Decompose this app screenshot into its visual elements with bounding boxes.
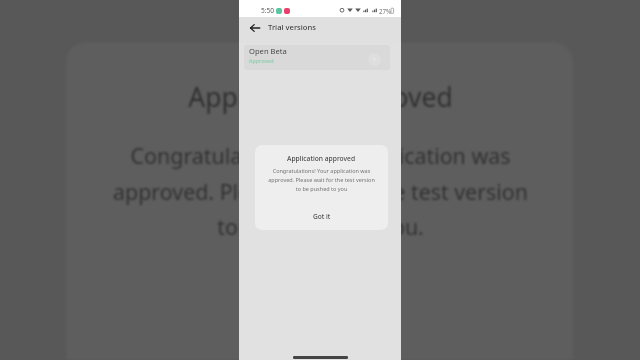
button[interactable]: Back (247, 20, 263, 36)
staticText: Approved (249, 57, 274, 64)
staticText: Congratulations! Your application was ap… (268, 167, 375, 193)
staticText: Trial versions (268, 22, 316, 32)
staticText: Application approved (287, 154, 356, 163)
staticText: Open Beta (249, 46, 287, 56)
staticText: Got it (313, 212, 331, 221)
staticText: 5:50 (261, 6, 275, 15)
staticText: Application approved (188, 79, 453, 115)
button[interactable]: Got it (305, 210, 339, 223)
staticText: 27% (379, 7, 392, 15)
button[interactable]: Open Beta (244, 45, 390, 70)
staticText: Congratulations! Your application was ap… (113, 141, 528, 241)
